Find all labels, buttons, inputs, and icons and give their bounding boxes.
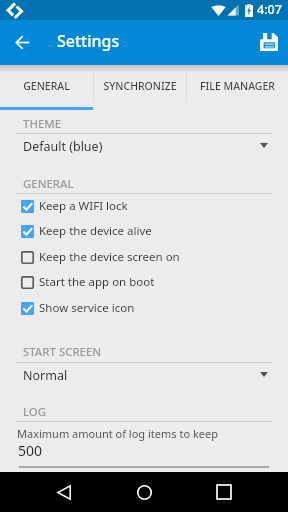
button[interactable]: Back <box>44 472 84 512</box>
button[interactable]: Keep a WIFI lock <box>0 194 288 219</box>
staticText: START SCREEN <box>23 344 102 360</box>
staticText: Keep the device screen on <box>39 249 180 265</box>
staticText: Keep the device alive <box>39 223 152 239</box>
button[interactable]: FILE MANAGER <box>186 65 288 107</box>
button[interactable]: Recents <box>204 472 244 512</box>
staticText: 4:07 <box>257 1 282 18</box>
staticText: GENERAL <box>23 176 74 192</box>
button[interactable]: Default (blue) <box>0 132 288 158</box>
staticText: GENERAL <box>23 79 70 93</box>
staticText: 500 <box>18 441 43 460</box>
staticText: Default (blue) <box>23 138 103 155</box>
staticText: Maximum amount of log items to keep <box>17 426 218 441</box>
staticText: THEME <box>23 116 62 132</box>
button[interactable]: Start the app on boot <box>0 270 288 295</box>
button[interactable]: Show service icon <box>0 296 288 321</box>
button[interactable]: Keep the device screen on <box>0 245 288 270</box>
button[interactable]: Keep the device alive <box>0 219 288 244</box>
staticText: LOG <box>23 404 47 420</box>
staticText: SYNCHRONIZE <box>103 79 177 93</box>
button[interactable]: Home <box>124 472 164 512</box>
staticText: Show service icon <box>39 300 135 316</box>
button[interactable]: Normal <box>0 361 288 387</box>
button[interactable]: SYNCHRONIZE <box>93 65 186 107</box>
staticText: Normal <box>23 367 68 384</box>
staticText: Keep a WIFI lock <box>39 198 128 214</box>
staticText: FILE MANAGER <box>200 79 275 93</box>
staticText: Start the app on boot <box>39 274 155 290</box>
button[interactable]: Back <box>8 28 37 57</box>
staticText: Settings <box>57 30 120 52</box>
button[interactable]: GENERAL <box>0 65 93 107</box>
button[interactable]: Save <box>252 25 285 58</box>
